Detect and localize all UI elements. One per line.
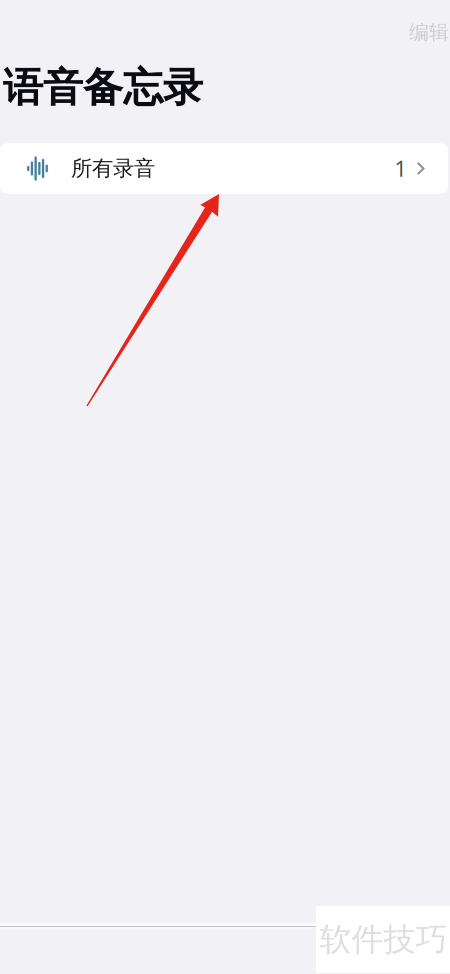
button[interactable]: 编辑 xyxy=(409,20,450,64)
staticText: 软件技巧 xyxy=(319,920,447,959)
staticText: 所有录音 xyxy=(71,155,155,182)
button[interactable]: 所有录音 xyxy=(0,143,448,194)
staticText: 1 xyxy=(394,154,406,183)
staticText: 语音备忘录 xyxy=(3,63,203,112)
staticText: 编辑 xyxy=(409,20,449,45)
